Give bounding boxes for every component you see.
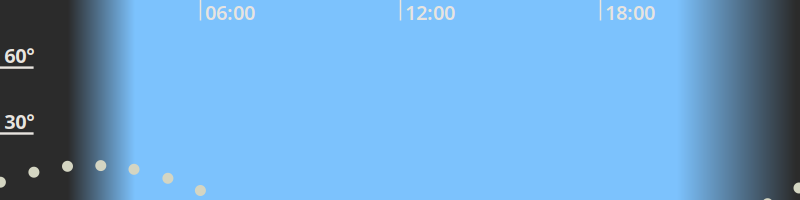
staticText: 12:00: [405, 0, 455, 26]
staticText: 18:00: [605, 0, 655, 26]
staticText: 06:00: [205, 0, 255, 26]
staticText: 30°: [4, 108, 34, 134]
staticText: 60°: [4, 42, 34, 69]
